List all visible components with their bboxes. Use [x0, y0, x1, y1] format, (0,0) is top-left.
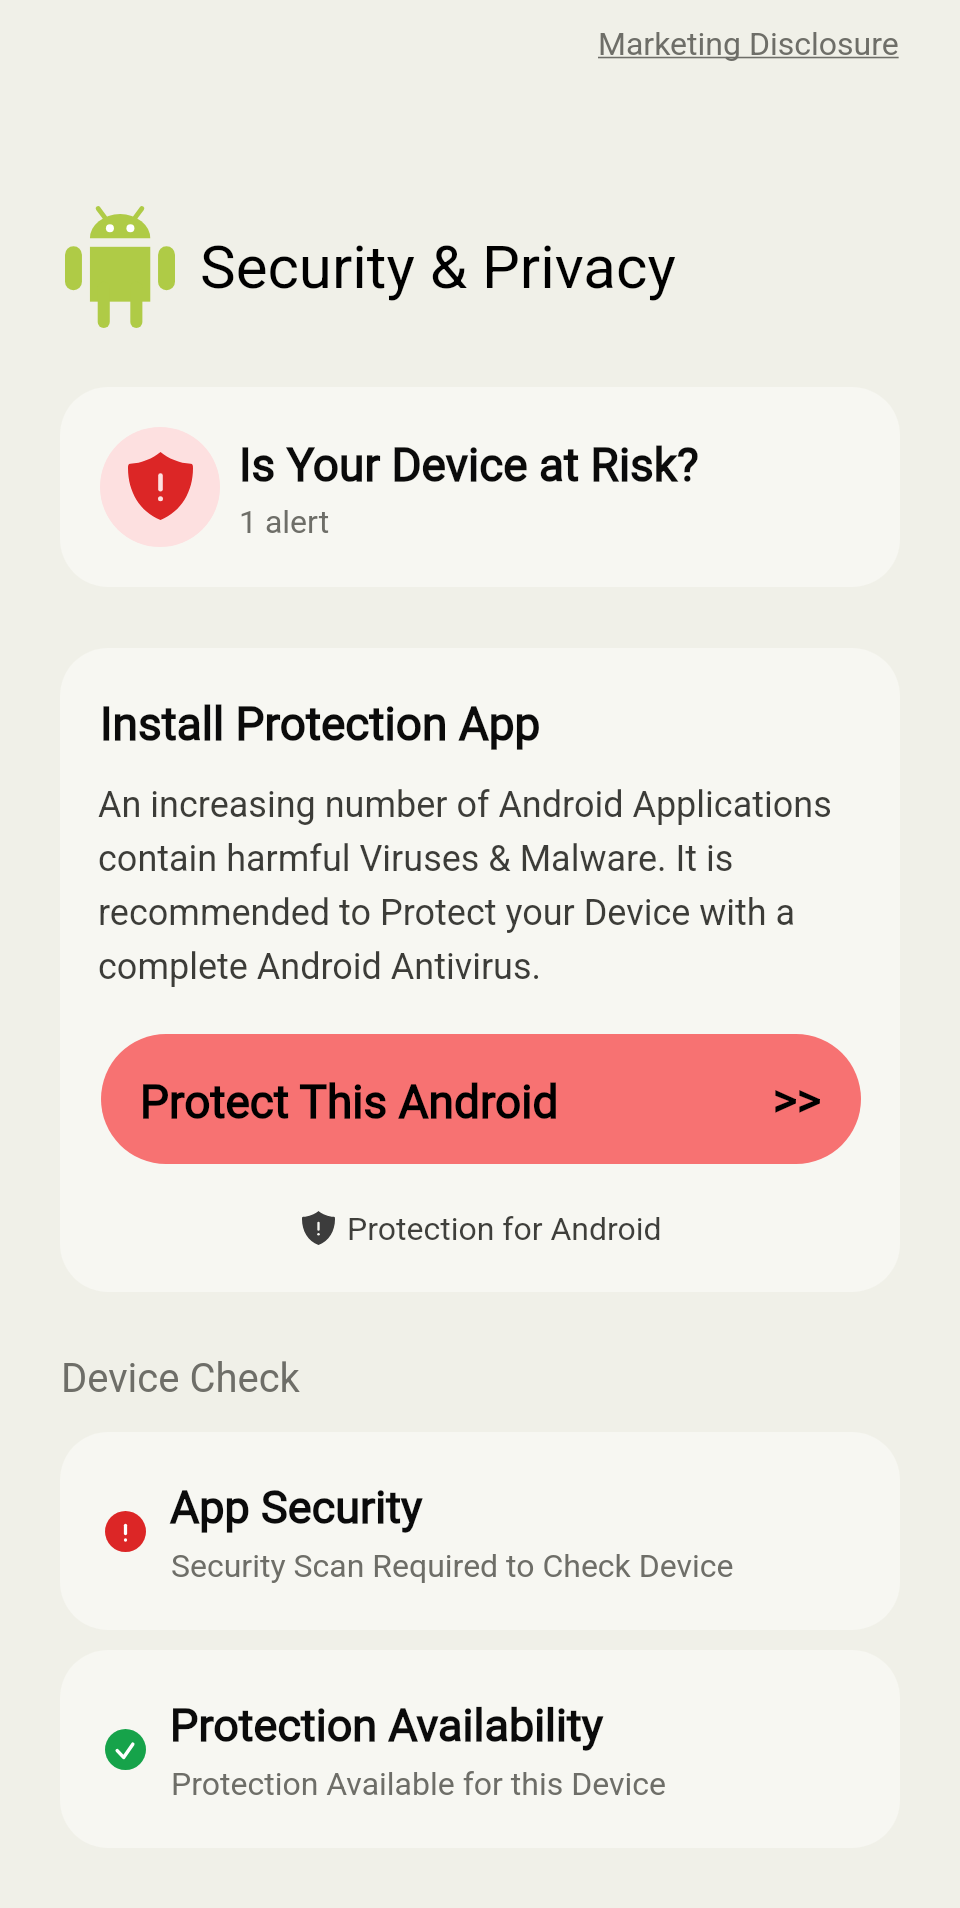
button[interactable]: Protection Availability [60, 1650, 900, 1848]
staticText: Protect This Android [140, 1075, 559, 1129]
staticText: Device Check [61, 1355, 300, 1402]
staticText: Protection for Android [347, 1210, 662, 1248]
staticText: App Security [170, 1481, 423, 1534]
button[interactable]: Protect This Android [101, 1034, 861, 1164]
button[interactable]: App Security [60, 1432, 900, 1630]
button[interactable]: Marketing Disclosure [598, 25, 899, 63]
staticText: Security & Privacy [200, 232, 676, 302]
staticText: Protection Available for this Device [171, 1765, 666, 1803]
staticText: Security Scan Required to Check Device [171, 1547, 734, 1585]
staticText: An increasing number of Android Applicat… [98, 784, 862, 988]
staticText: Protection Availability [170, 1699, 604, 1752]
staticText: Is Your Device at Risk? [239, 438, 699, 492]
staticText: >> [773, 1073, 822, 1127]
button[interactable]: Is Your Device at Risk? [60, 387, 900, 587]
staticText: Marketing Disclosure [598, 25, 899, 63]
staticText: Install Protection App [100, 697, 541, 751]
staticText: 1 alert [239, 503, 330, 541]
